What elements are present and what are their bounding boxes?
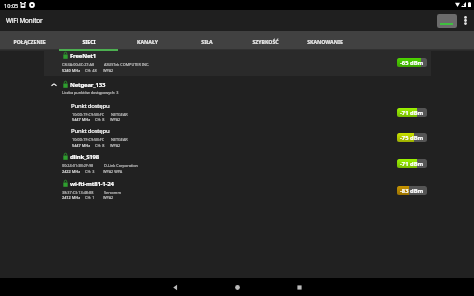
staticText: 10:0D:7F:C9:5B:FC <box>72 137 105 142</box>
staticText: WPA2 <box>110 143 121 148</box>
button[interactable] <box>44 122 431 148</box>
staticText: Punkt dostępu <box>71 127 110 135</box>
button[interactable]: SIŁA <box>177 31 236 49</box>
staticText: CH: 1 <box>85 195 95 200</box>
button[interactable]: KANAŁY <box>118 31 177 49</box>
button[interactable]: -75 dBm <box>397 133 427 142</box>
button[interactable] <box>44 148 431 175</box>
button[interactable]: SZYBKOŚĆ <box>236 31 295 49</box>
staticText: CH: 48 <box>85 68 97 73</box>
staticText: C8:3A:00:4C:27:A8 <box>62 62 95 67</box>
staticText: WPA2 <box>103 68 114 73</box>
staticText: 5447 MHz <box>72 117 91 122</box>
staticText: SIŁA <box>201 38 213 45</box>
staticText: 00:24:01:3B:2F:98 <box>62 163 94 168</box>
staticText: WPA2 WPA <box>103 169 123 174</box>
staticText: ASUSTek COMPUTER INC. <box>104 62 150 67</box>
staticText: Netgear_133 <box>70 81 106 89</box>
staticText: 2412 MHz <box>62 195 81 200</box>
staticText: -65 dBm <box>400 59 424 67</box>
button[interactable] <box>44 175 431 202</box>
staticText: CH: 3 <box>85 169 95 174</box>
staticText: -75 dBm <box>400 134 424 142</box>
staticText: -71 dBm <box>400 109 424 117</box>
button[interactable]: More options <box>459 10 471 31</box>
button[interactable]: -65 dBm <box>397 58 427 67</box>
staticText: WPA2 <box>103 195 114 200</box>
staticText: KANAŁY <box>137 38 158 45</box>
staticText: 10:05 <box>4 2 19 10</box>
button[interactable]: -71 dBm <box>397 159 427 168</box>
button[interactable]: Toggle scanning <box>437 14 457 28</box>
staticText: WPA2 <box>110 117 121 122</box>
staticText: Liczba punktów dostępowych: 3 <box>62 90 119 95</box>
staticText: CH: 8 <box>95 143 105 148</box>
staticText: POŁĄCZENIE <box>13 38 46 45</box>
button[interactable]: POŁĄCZENIE <box>0 31 59 49</box>
button[interactable]: -71 dBm <box>397 108 427 117</box>
button[interactable]: -83 dBm <box>397 186 427 195</box>
button[interactable]: SIECI <box>59 31 118 49</box>
staticText: NETGEAR <box>111 137 128 142</box>
button[interactable] <box>44 97 431 123</box>
staticText: -83 dBm <box>400 187 424 195</box>
staticText: 38:37:C3:13:48:88 <box>62 190 94 195</box>
staticText: 10:0D:7F:C9:5B:FC <box>72 112 105 117</box>
staticText: CH: 8 <box>95 117 105 122</box>
staticText: -71 dBm <box>400 160 424 168</box>
button[interactable]: Home <box>206 278 268 296</box>
button[interactable]: SKANOWANIE <box>295 31 354 49</box>
staticText: Punkt dostępu <box>71 102 110 110</box>
staticText: SKANOWANIE <box>307 38 343 45</box>
staticText: dlink_S198 <box>70 153 100 161</box>
staticText: FreeNet1 <box>70 52 96 60</box>
button[interactable] <box>44 47 431 74</box>
staticText: Sercomm <box>104 190 121 195</box>
staticText: D-Link Corporation <box>104 163 138 168</box>
staticText: SIECI <box>82 38 96 45</box>
staticText: WiFi Monitor <box>6 16 43 25</box>
staticText: SZYBKOŚĆ <box>252 38 279 45</box>
button[interactable]: Collapse group <box>44 75 431 96</box>
staticText: wi-fti-mt81-1-24 <box>70 180 114 188</box>
staticText: 5447 MHz <box>72 143 91 148</box>
button[interactable]: Back <box>144 278 206 296</box>
staticText: 5240 MHz <box>62 68 81 73</box>
staticText: NETGEAR <box>111 112 128 117</box>
button[interactable]: Recents <box>268 278 330 296</box>
staticText: 2422 MHz <box>62 169 81 174</box>
